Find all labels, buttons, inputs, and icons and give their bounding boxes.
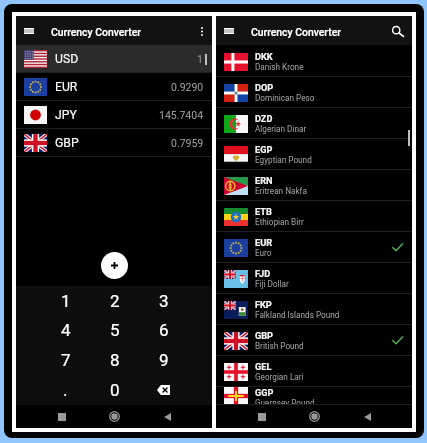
staticText: EUR (255, 237, 273, 248)
staticText: FJD (255, 268, 271, 279)
staticText: DKK (255, 51, 273, 62)
staticText: 0.7959 (171, 137, 204, 149)
button[interactable]: FJD (216, 263, 412, 294)
staticText: Fiji Dollar (255, 279, 289, 289)
staticText: Danish Krone (255, 62, 304, 72)
button[interactable]: Recent apps (35, 405, 88, 428)
staticText: JPY (55, 108, 77, 122)
button[interactable]: EUR (16, 73, 212, 101)
staticText: Currency Converter (51, 26, 141, 38)
button[interactable]: ERN (216, 170, 412, 201)
button[interactable]: 1 (41, 286, 90, 315)
button[interactable]: Add currency (101, 252, 128, 279)
button[interactable]: More options (193, 22, 211, 40)
staticText: GGP (255, 387, 274, 398)
button[interactable]: GBP (216, 325, 412, 356)
staticText: EGP (255, 144, 273, 155)
staticText: Guernsey Pound (255, 398, 315, 405)
button[interactable]: . (41, 375, 90, 405)
button[interactable]: ETB (216, 201, 412, 232)
staticText: DZD (255, 113, 273, 124)
button[interactable]: 4 (41, 315, 90, 345)
button[interactable]: 9 (139, 345, 188, 375)
staticText: Currency Converter (251, 26, 341, 38)
button[interactable]: USD (16, 45, 212, 73)
staticText: ERN (255, 175, 273, 186)
staticText: Dominican Peso (255, 93, 315, 103)
staticText: 1 (197, 53, 203, 65)
button[interactable]: 2 (90, 286, 139, 315)
staticText: Algerian Dinar (255, 124, 307, 134)
staticText: 145.7404 (159, 109, 204, 121)
staticText: FKP (255, 299, 272, 310)
staticText: British Pound (255, 341, 304, 351)
button[interactable]: Search (389, 22, 407, 40)
button[interactable]: FKP (216, 294, 412, 325)
button[interactable]: Home (288, 405, 341, 428)
button[interactable]: Back (341, 405, 394, 428)
button[interactable]: GGP (216, 387, 412, 405)
staticText: 3 (159, 291, 169, 311)
button[interactable]: DKK (216, 46, 412, 77)
staticText: Georgian Lari (255, 372, 304, 382)
staticText: DOP (255, 82, 274, 93)
staticText: 6 (159, 320, 169, 340)
button[interactable]: DOP (216, 77, 412, 108)
staticText: 7 (61, 350, 71, 370)
button[interactable]: 3 (139, 286, 188, 315)
button[interactable]: Recent apps (235, 405, 288, 428)
staticText: Ethiopian Birr (255, 217, 304, 227)
staticText: . (63, 380, 68, 400)
staticText: Eritrean Nakfa (255, 186, 307, 196)
staticText: Falkland Islands Pound (255, 310, 340, 320)
staticText: 1 (61, 291, 71, 311)
button[interactable]: 8 (90, 345, 139, 375)
staticText: 0.9290 (171, 81, 204, 93)
button[interactable]: GEL (216, 356, 412, 387)
staticText: ETB (255, 206, 272, 217)
button[interactable]: EGP (216, 139, 412, 170)
staticText: 5 (110, 320, 120, 340)
button[interactable]: Backspace (139, 375, 188, 405)
button[interactable]: Menu (20, 22, 38, 40)
button[interactable]: Back (141, 405, 194, 428)
staticText: Egyptian Pound (255, 155, 312, 165)
button[interactable]: 0 (90, 375, 139, 405)
staticText: 4 (61, 320, 71, 340)
button[interactable]: DZD (216, 108, 412, 139)
staticText: 2 (110, 291, 120, 311)
staticText: GBP (255, 330, 274, 341)
staticText: GEL (255, 361, 272, 372)
button[interactable]: 6 (139, 315, 188, 345)
button[interactable]: Home (88, 405, 141, 428)
staticText: 0 (110, 380, 120, 400)
button[interactable]: JPY (16, 101, 212, 129)
button[interactable]: 7 (41, 345, 90, 375)
button[interactable]: GBP (16, 129, 212, 157)
staticText: Euro (255, 248, 272, 258)
staticText: GBP (55, 136, 79, 150)
staticText: 9 (159, 350, 169, 370)
staticText: USD (55, 52, 79, 66)
button[interactable]: EUR (216, 232, 412, 263)
button[interactable]: Menu (220, 22, 238, 40)
staticText: 8 (110, 350, 120, 370)
staticText: EUR (55, 80, 78, 94)
button[interactable]: 5 (90, 315, 139, 345)
